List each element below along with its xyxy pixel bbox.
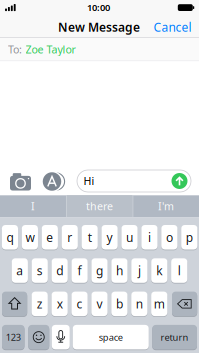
button[interactable]: c — [71, 292, 88, 316]
staticText: o — [166, 229, 173, 245]
button[interactable]: Cancel — [150, 17, 194, 37]
button[interactable]: space — [73, 325, 149, 349]
staticText: n — [136, 296, 143, 312]
staticText: Zoe Taylor — [25, 42, 75, 56]
staticText: i — [148, 229, 151, 245]
staticText: d — [56, 263, 63, 278]
button[interactable]: p — [181, 225, 197, 249]
staticText: Hi — [83, 174, 94, 188]
staticText: p — [186, 229, 193, 245]
button[interactable]: i — [141, 225, 158, 249]
staticText: 123 — [6, 331, 21, 343]
button[interactable]: x — [51, 292, 68, 316]
button[interactable]: t — [82, 225, 98, 249]
staticText: To: — [8, 42, 22, 56]
button[interactable]: b — [111, 292, 127, 316]
staticText: w — [25, 229, 34, 245]
button[interactable]: h — [111, 258, 128, 283]
button[interactable]: y — [101, 225, 118, 249]
staticText: h — [116, 263, 123, 278]
staticText: q — [6, 229, 13, 245]
button[interactable]: w — [22, 225, 38, 249]
staticText: a — [16, 263, 23, 278]
button[interactable]: Shift — [2, 292, 27, 316]
staticText: t — [88, 229, 92, 245]
button[interactable]: Send — [171, 173, 187, 189]
staticText: b — [116, 296, 123, 312]
button[interactable]: k — [151, 258, 167, 283]
button[interactable]: To: — [0, 38, 199, 60]
staticText: s — [37, 263, 43, 278]
button[interactable]: there — [69, 195, 129, 217]
button[interactable]: Dictate — [52, 325, 70, 349]
button[interactable]: r — [62, 225, 78, 249]
staticText: New Message — [58, 19, 140, 35]
button[interactable]: j — [131, 258, 147, 283]
button[interactable]: o — [161, 225, 177, 249]
staticText: 10:00 — [87, 1, 110, 13]
staticText: Cancel — [153, 19, 191, 35]
staticText: v — [96, 296, 102, 312]
staticText: return — [161, 331, 189, 343]
staticText: f — [78, 263, 82, 278]
staticText: r — [67, 229, 72, 245]
button[interactable]: Delete — [172, 292, 197, 316]
staticText: y — [107, 229, 113, 245]
staticText: e — [46, 229, 53, 245]
button[interactable]: u — [121, 225, 138, 249]
button[interactable]: g — [91, 258, 108, 283]
button[interactable]: v — [91, 292, 108, 316]
button[interactable]: a — [12, 258, 28, 283]
button[interactable]: Apps — [40, 170, 66, 192]
staticText: l — [178, 263, 181, 278]
staticText: k — [156, 263, 162, 278]
staticText: m — [154, 296, 165, 312]
staticText: j — [138, 263, 141, 278]
button[interactable]: Emoji — [28, 325, 49, 349]
button[interactable]: e — [42, 225, 58, 249]
button[interactable]: d — [52, 258, 68, 283]
staticText: x — [57, 296, 63, 312]
button[interactable]: return — [152, 325, 197, 349]
staticText: space — [99, 331, 123, 343]
button[interactable]: f — [71, 258, 88, 283]
button[interactable]: n — [131, 292, 147, 316]
button[interactable]: l — [171, 258, 187, 283]
button[interactable]: s — [32, 258, 48, 283]
staticText: I'm — [158, 199, 174, 213]
staticText: I — [31, 199, 35, 213]
staticText: u — [126, 229, 133, 245]
button[interactable]: Camera — [8, 171, 32, 193]
staticText: g — [96, 263, 103, 278]
button[interactable]: m — [151, 292, 167, 316]
button[interactable]: Numbers — [2, 325, 24, 349]
button[interactable]: q — [2, 225, 18, 249]
button[interactable]: I — [3, 195, 63, 217]
staticText: c — [77, 296, 83, 312]
button[interactable]: z — [32, 292, 48, 316]
staticText: there — [86, 199, 113, 213]
staticText: z — [37, 296, 43, 312]
button[interactable]: I'm — [136, 195, 196, 217]
